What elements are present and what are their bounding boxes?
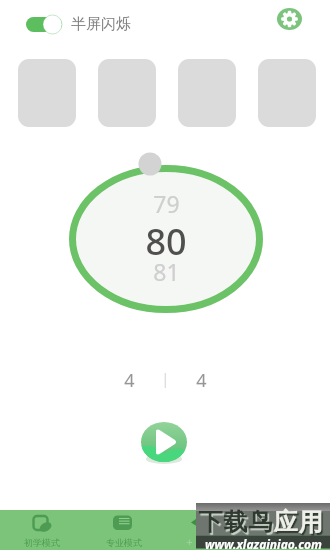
- button[interactable]: 专业模式: [91, 510, 157, 550]
- staticText: 80: [145, 217, 187, 259]
- staticText: www.xlazainiao.com: [205, 536, 322, 549]
- staticText: 下载鸟: [198, 507, 273, 537]
- button[interactable]: 初学模式: [8, 510, 74, 550]
- staticText: 应用: [273, 507, 323, 537]
- staticText: 专业模式: [106, 537, 142, 548]
- staticText: 初学模式: [24, 537, 60, 548]
- staticText: 81: [153, 256, 180, 286]
- staticText: |: [161, 368, 170, 388]
- button[interactable]: [258, 59, 316, 127]
- staticText: +: [186, 534, 193, 548]
- button[interactable]: [136, 416, 192, 468]
- button[interactable]: [178, 59, 236, 127]
- button[interactable]: [18, 59, 76, 127]
- staticText: 79: [153, 188, 180, 218]
- button[interactable]: [109, 366, 221, 392]
- button[interactable]: [61, 155, 271, 325]
- button[interactable]: [277, 8, 303, 31]
- staticText: 4: [196, 368, 207, 393]
- staticText: 4: [124, 368, 135, 393]
- button[interactable]: 半屏闪烁: [26, 10, 131, 38]
- button[interactable]: [98, 59, 156, 127]
- staticText: 半屏闪烁: [71, 15, 131, 34]
